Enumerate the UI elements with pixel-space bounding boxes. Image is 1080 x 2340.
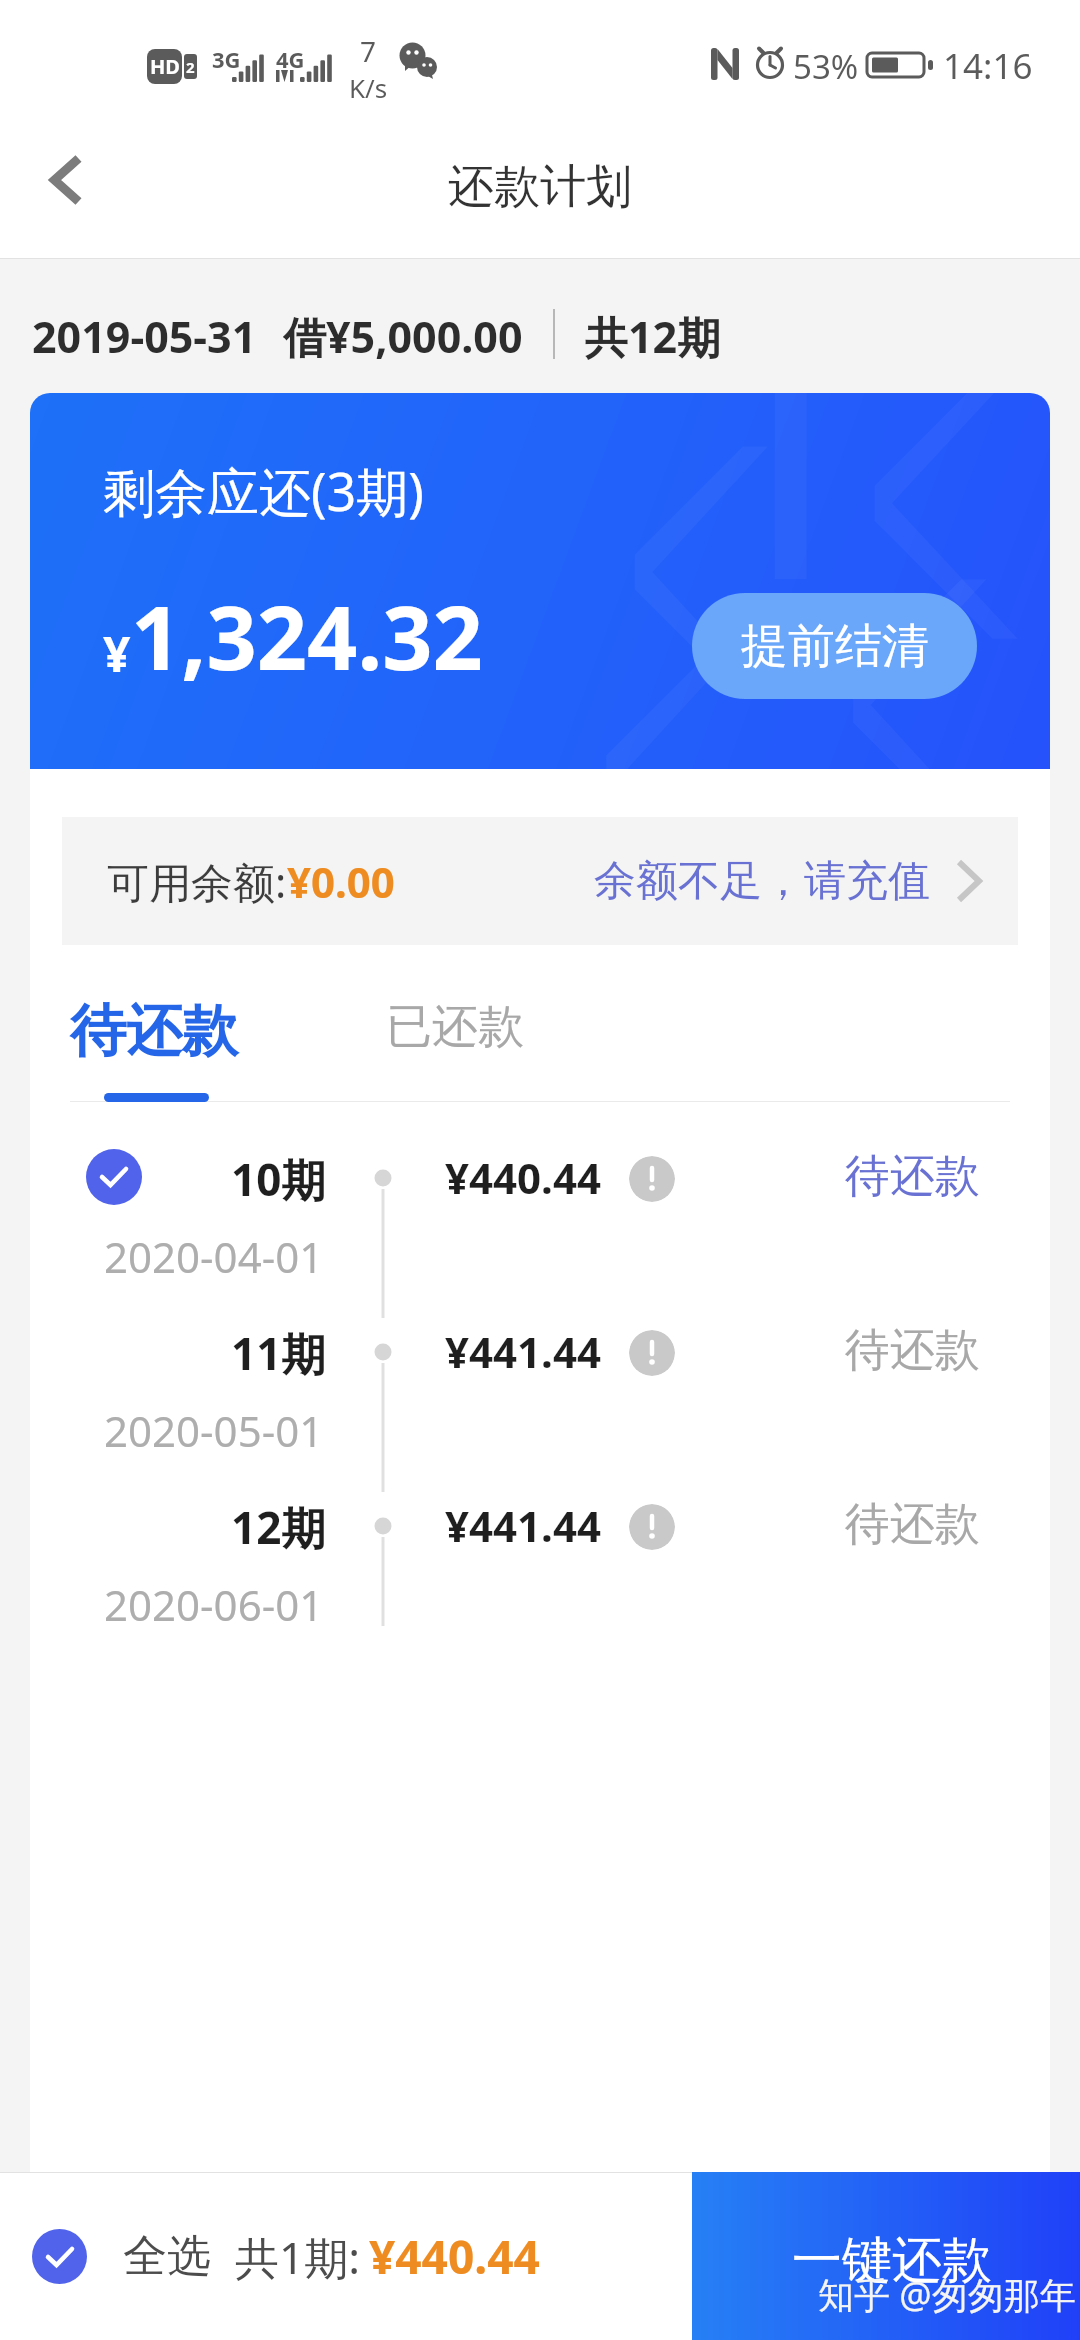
staticText: 53% [793,44,859,89]
staticText: HD [150,53,180,80]
staticText: 全选 [123,2229,211,2284]
staticText: 1,324.32 [131,576,483,696]
staticText: 还款计划 [448,158,632,216]
staticText: 2019-05-31 [32,307,257,361]
staticText: 提前结清 [741,617,929,676]
staticText: ¥440.44 [445,1149,601,1206]
staticText: 3G [212,44,241,74]
button[interactable]: Back [13,127,119,233]
staticText: 待还款 [845,1496,980,1553]
button[interactable]: 可用余额: [62,817,1018,945]
button[interactable]: 已还款 [346,988,564,1072]
staticText: 可用余额: [107,853,287,910]
staticText: 2020-06-01 [104,1576,324,1633]
staticText: ¥441.44 [445,1323,601,1380]
button[interactable]: 12期 [0,1472,1080,1646]
staticText: K/s [349,70,388,105]
staticText: 待还款 [845,1148,980,1205]
staticText: 待还款 [70,996,238,1067]
button[interactable]: Installment details [629,1330,675,1376]
staticText: 10期 [231,1149,326,1209]
button[interactable]: Select installment 10期 [86,1149,142,1205]
staticText: ¥ [103,621,131,686]
button[interactable]: 待还款 [30,988,278,1083]
staticText: 2020-04-01 [104,1228,324,1285]
button[interactable]: 提前结清 [692,593,977,699]
button[interactable]: 一键还款 [692,2172,1080,2340]
staticText: 共12期 [585,307,721,361]
button[interactable]: 全选 [32,2225,540,2288]
staticText: 12期 [231,1497,326,1557]
button[interactable]: Select installment 10期 [0,1124,1080,1298]
staticText: ¥0.00 [287,853,395,910]
staticText: 剩余应还(3期) [103,455,424,526]
staticText: 待还款 [845,1322,980,1379]
staticText: ¥440.44 [369,2225,540,2288]
staticText: 7 [360,32,377,70]
staticText: 11期 [231,1323,326,1383]
staticText: 14:16 [943,42,1033,90]
staticText: 2 [186,57,195,77]
button[interactable]: 11期 [0,1298,1080,1472]
staticText: 4G [276,44,305,74]
staticText: 一键还款 [792,2229,992,2292]
staticText: 知乎 @匆匆那年 [818,2270,1076,2319]
staticText: 借¥5,000.00 [283,307,523,361]
button[interactable]: Installment details [629,1156,675,1202]
staticText: ¥441.44 [445,1497,601,1554]
staticText: 共1期: [235,2227,360,2287]
staticText: 余额不足，请充值 [594,855,930,908]
button[interactable]: Installment details [629,1504,675,1550]
staticText: 已还款 [386,998,524,1056]
staticText: 2020-05-01 [104,1402,324,1459]
